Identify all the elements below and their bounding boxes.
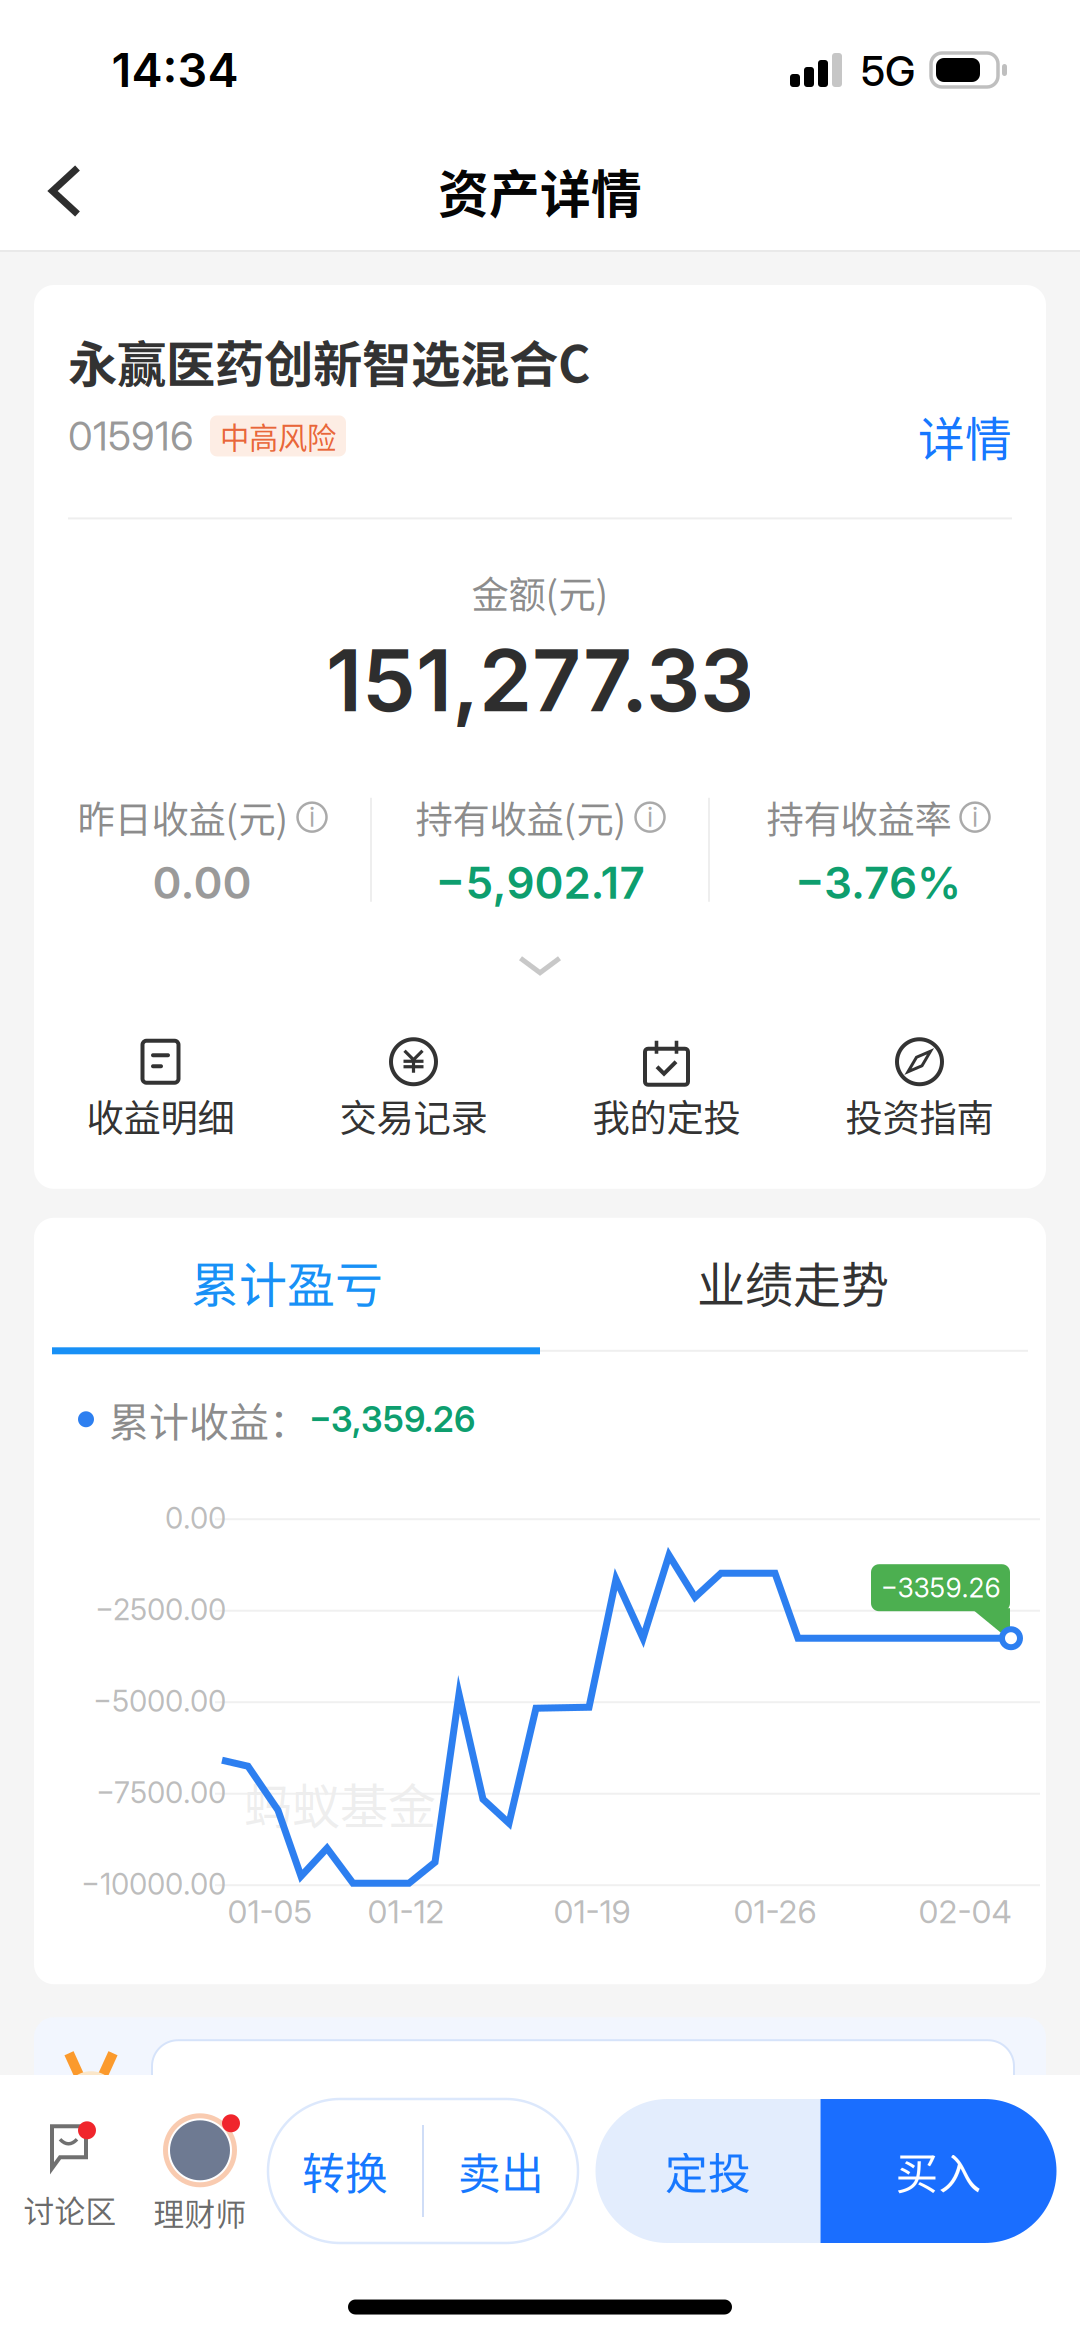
staticText: −5000.00: [93, 1683, 226, 1719]
staticText: 02-04: [918, 1892, 1011, 1931]
staticText: 我的定投: [592, 1089, 740, 1143]
button[interactable]: 收益明细: [34, 1039, 287, 1143]
button[interactable]: 定投: [595, 2099, 820, 2243]
button[interactable]: 投资指南: [793, 1039, 1046, 1143]
staticText: 持有收益率: [766, 790, 951, 844]
staticText: −7500.00: [96, 1775, 226, 1810]
button[interactable]: 讨论区: [12, 2118, 128, 2238]
staticText: 理财师: [153, 2190, 246, 2235]
staticText: 讨论区: [23, 2187, 116, 2232]
staticText: −10000.00: [81, 1866, 226, 1902]
staticText: 转换: [302, 2140, 388, 2202]
staticText: 中高风险: [220, 415, 336, 457]
staticText: 0.00: [152, 856, 251, 909]
staticText: 永赢医药创新智选混合C: [68, 325, 590, 396]
staticText: 交易记录: [339, 1089, 487, 1143]
staticText: 0.00: [165, 1500, 226, 1536]
button[interactable]: 累计盈亏: [34, 1247, 540, 1316]
staticText: 累计收益：: [109, 1390, 309, 1448]
staticText: 资产详情: [438, 154, 642, 228]
staticText: i: [647, 801, 653, 833]
staticText: 卖出: [458, 2140, 544, 2202]
staticText: −3359.26: [880, 1572, 1000, 1604]
staticText: −2500.00: [95, 1592, 226, 1627]
staticText: 定投: [665, 2140, 751, 2202]
staticText: 昨日收益(元): [77, 790, 288, 844]
staticText: 业绩走势: [697, 1247, 889, 1316]
staticText: 金额(元): [471, 565, 608, 619]
button[interactable]: Back: [0, 130, 110, 252]
staticText: 持有收益(元): [415, 790, 626, 844]
staticText: 详情: [918, 402, 1012, 470]
staticText: 收益明细: [86, 1089, 234, 1143]
staticText: 投资指南: [845, 1089, 993, 1143]
staticText: 151,277.33: [326, 628, 754, 732]
staticText: −5,902.17: [435, 856, 644, 909]
button[interactable]: 交易记录: [287, 1039, 540, 1143]
staticText: 14:34: [111, 42, 238, 98]
button[interactable]: 理财师: [142, 2116, 258, 2236]
button[interactable]: 我的定投: [540, 1039, 793, 1143]
staticText: −3.76%: [795, 856, 961, 909]
button[interactable]: 业绩走势: [540, 1247, 1046, 1316]
button[interactable]: 买入: [820, 2099, 1056, 2243]
button[interactable]: 转换: [268, 2099, 422, 2243]
staticText: 01-26: [733, 1892, 816, 1931]
staticText: i: [972, 801, 978, 833]
staticText: 015916: [68, 412, 194, 460]
staticText: 01-12: [367, 1892, 444, 1931]
staticText: 买入: [895, 2140, 981, 2202]
staticText: 5G: [861, 46, 915, 96]
staticText: 01-05: [227, 1892, 312, 1931]
staticText: 累计盈亏: [191, 1247, 383, 1316]
staticText: 蚂蚁基金: [244, 1768, 436, 1838]
staticText: −3,359.26: [309, 1398, 475, 1440]
staticText: i: [309, 801, 315, 833]
staticText: 01-19: [553, 1892, 630, 1931]
button[interactable]: 详情: [918, 402, 1012, 470]
button[interactable]: 卖出: [424, 2099, 578, 2243]
